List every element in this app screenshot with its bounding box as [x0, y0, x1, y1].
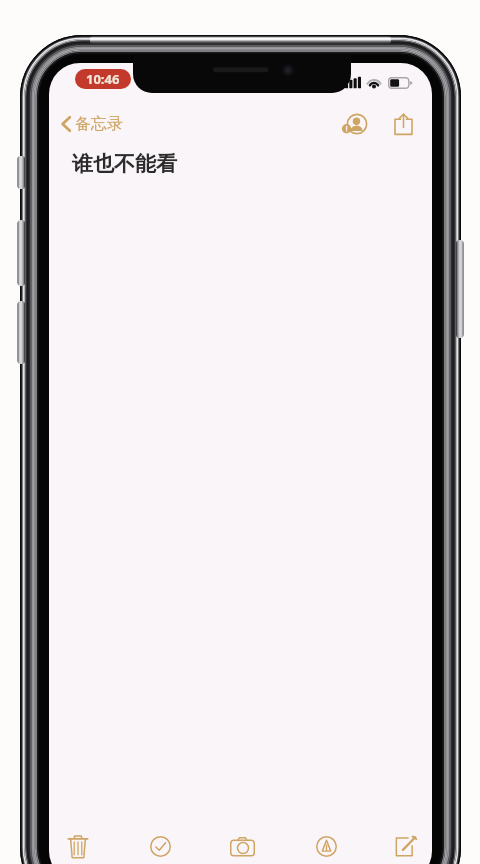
staticText: 谁也不能看 — [72, 151, 177, 177]
button[interactable]: Camera — [220, 824, 264, 864]
button[interactable]: Delete — [56, 824, 100, 864]
button[interactable]: Collaborate — [337, 108, 372, 140]
button[interactable]: Checklist — [138, 824, 182, 864]
button[interactable]: 备忘录 — [57, 110, 127, 138]
button[interactable]: Share — [386, 108, 421, 140]
staticText: 备忘录 — [75, 114, 123, 134]
staticText: 10:46 — [86, 70, 120, 88]
button[interactable]: Markup — [304, 824, 348, 864]
button[interactable]: New note — [384, 824, 428, 864]
